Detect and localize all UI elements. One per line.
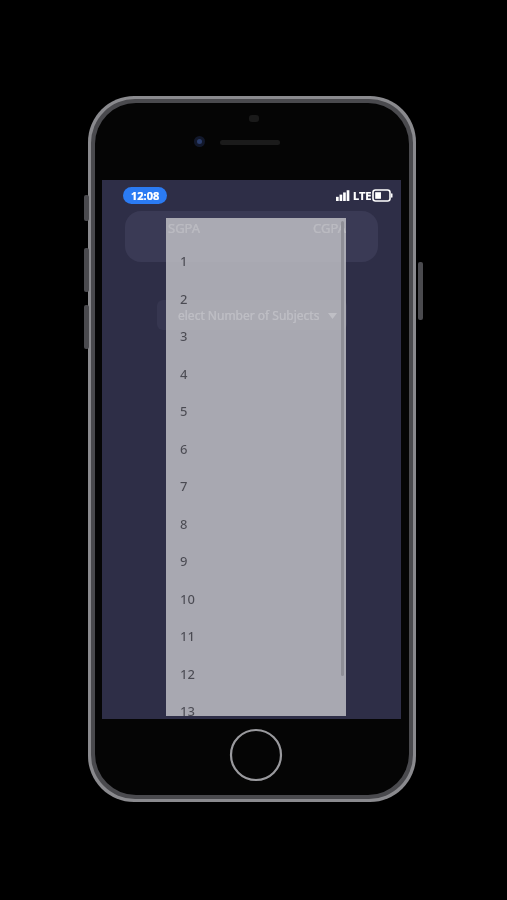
staticText: 3: [180, 327, 188, 345]
staticText: 6: [180, 440, 188, 458]
staticText: 10: [180, 590, 195, 608]
button[interactable]: [125, 211, 378, 262]
staticText: LTE: [353, 188, 372, 203]
button[interactable]: 5: [166, 392, 346, 429]
button[interactable]: 8: [166, 505, 346, 542]
staticText: 7: [180, 477, 188, 495]
button[interactable]: CGPA: [313, 219, 346, 237]
button[interactable]: 4: [166, 355, 346, 392]
staticText: 5: [180, 402, 188, 420]
button[interactable]: 13: [166, 692, 346, 729]
staticText: 8: [180, 515, 188, 533]
button[interactable]: SGPA: [168, 219, 201, 237]
staticText: 2: [180, 290, 188, 308]
button[interactable]: 1: [166, 242, 346, 279]
button[interactable]: 12: [166, 655, 346, 692]
staticText: 1: [180, 252, 188, 270]
staticText: 12:08: [131, 188, 160, 203]
button[interactable]: 2: [166, 280, 346, 317]
staticText: 13: [180, 702, 195, 720]
button[interactable]: 11: [166, 617, 346, 654]
staticText: elect Number of Subjects: [178, 307, 320, 323]
button[interactable]: [157, 300, 347, 330]
button[interactable]: 10: [166, 580, 346, 617]
other: Home: [230, 729, 282, 781]
button[interactable]: 9: [166, 542, 346, 579]
staticText: 12: [180, 665, 195, 683]
button[interactable]: 7: [166, 467, 346, 504]
staticText: 9: [180, 552, 188, 570]
staticText: 4: [180, 365, 188, 383]
button[interactable]: 6: [166, 430, 346, 467]
button[interactable]: 3: [166, 317, 346, 354]
staticText: 11: [180, 627, 195, 645]
